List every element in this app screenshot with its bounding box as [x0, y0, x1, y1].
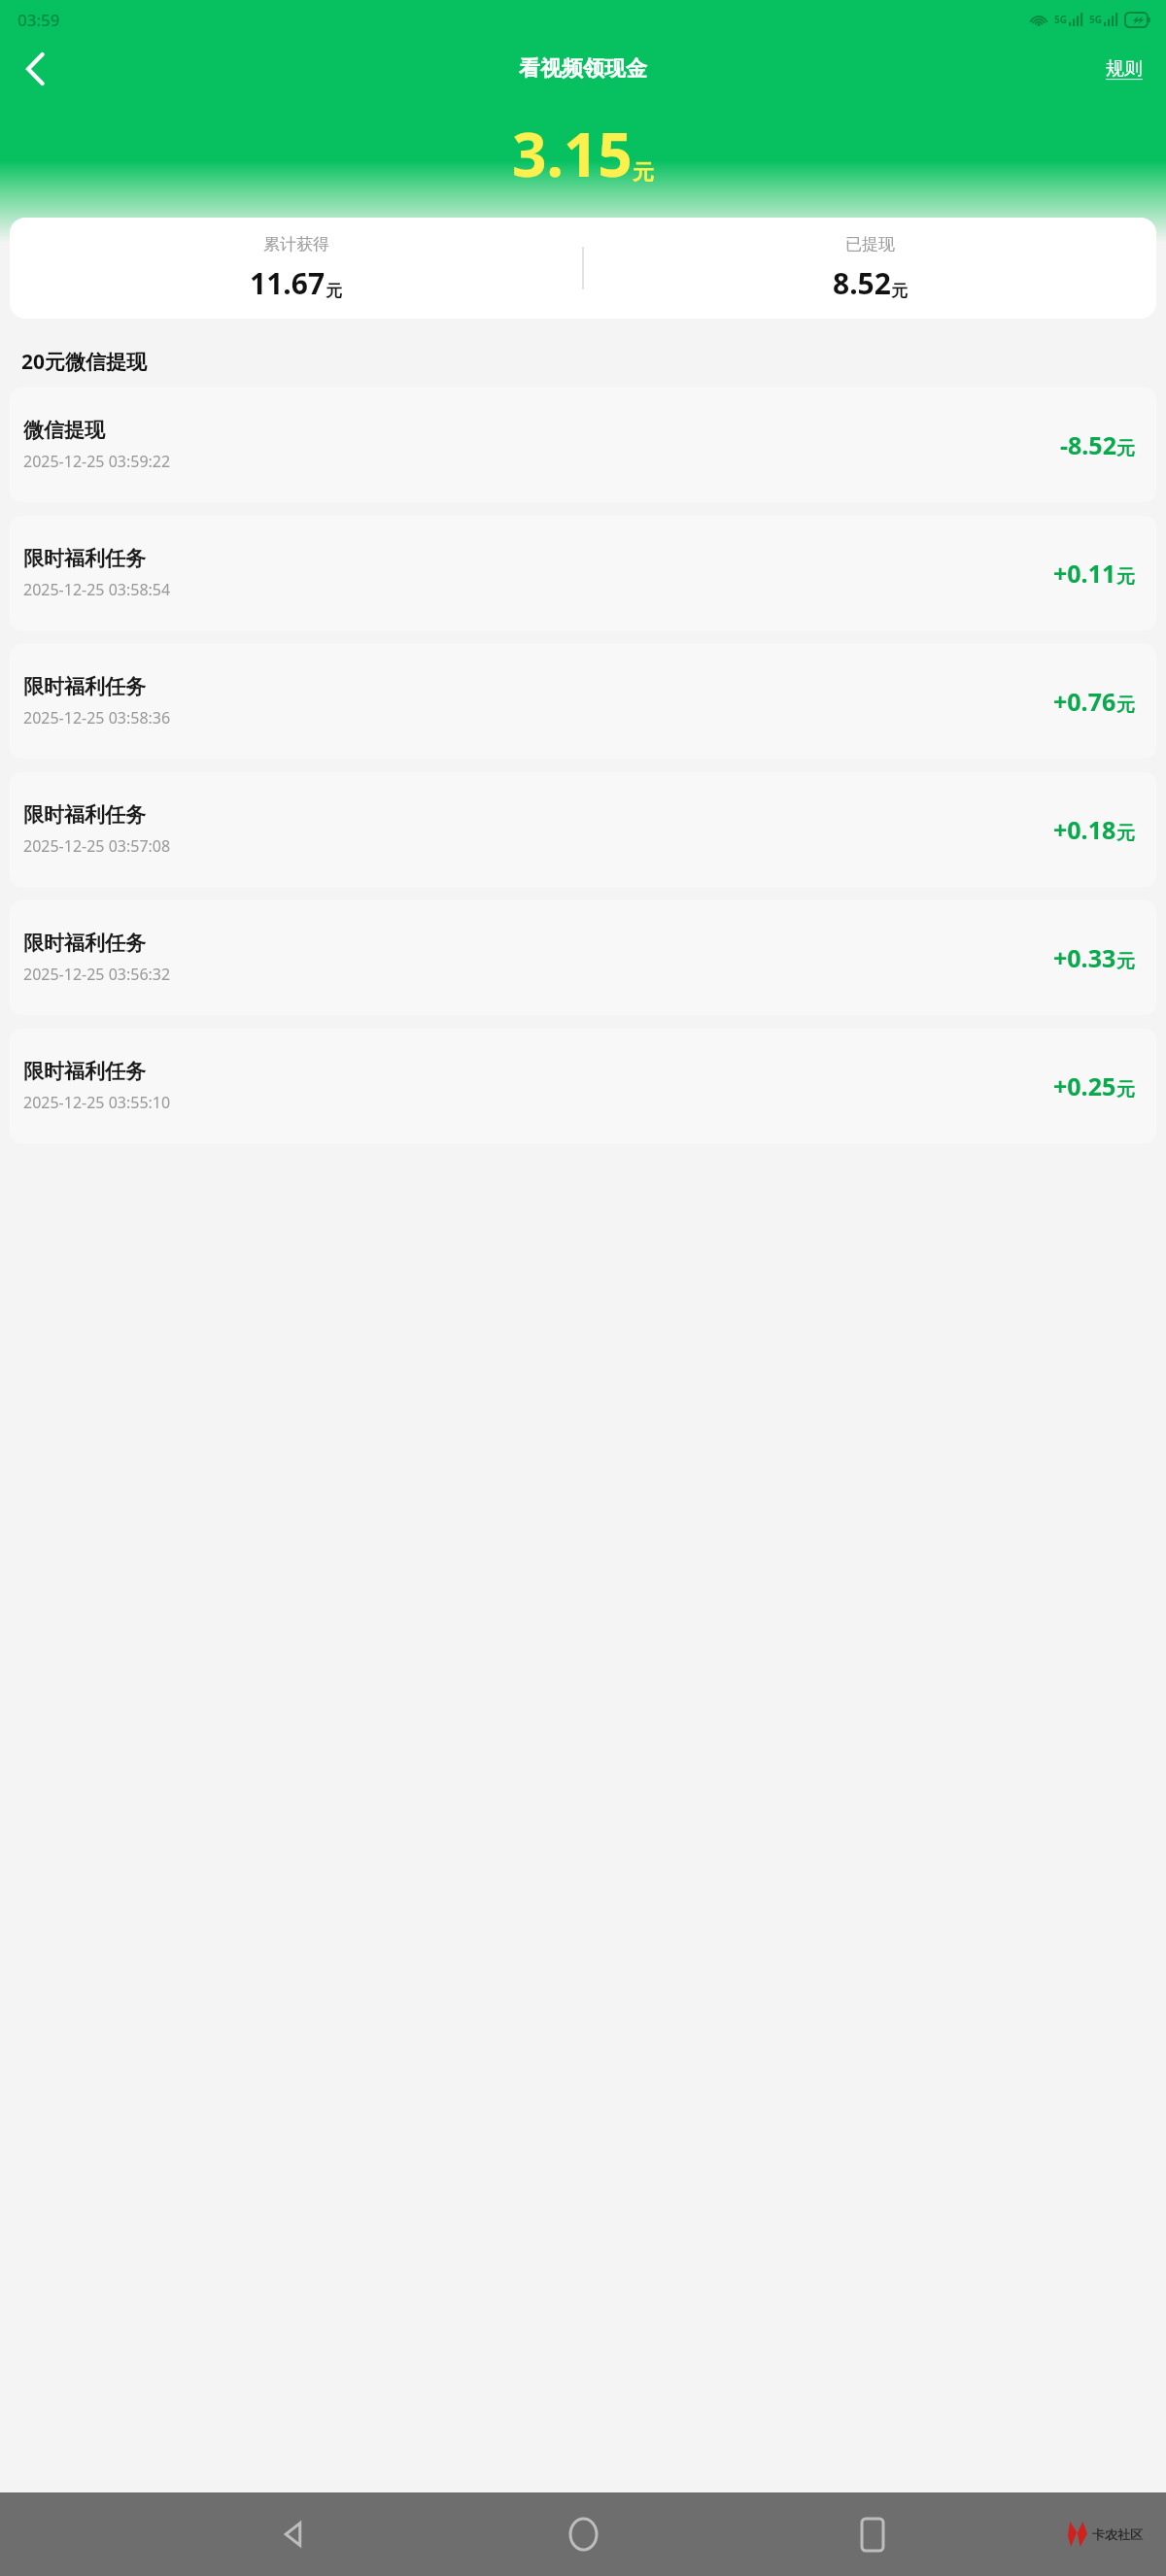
staticText: 看视频领现金: [519, 55, 647, 83]
button[interactable]: 限时福利任务: [10, 772, 1156, 887]
staticText: 限时福利任务: [23, 802, 146, 828]
staticText: 2025-12-25 03:55:10: [23, 1092, 171, 1113]
staticText: 2025-12-25 03:56:32: [23, 964, 171, 985]
button[interactable]: 限时福利任务: [10, 900, 1156, 1015]
staticText: 元: [1116, 694, 1135, 717]
staticText: 11.67: [250, 263, 326, 303]
staticText: 20元微信提现: [21, 348, 148, 376]
staticText: 2025-12-25 03:58:36: [23, 707, 171, 729]
staticText: +0.76: [1053, 685, 1116, 718]
button[interactable]: 累计获得: [10, 218, 1156, 319]
staticText: 限时福利任务: [23, 931, 146, 956]
staticText: 规则: [1106, 57, 1143, 81]
button[interactable]: Recents: [839, 2500, 907, 2568]
staticText: 03:59: [17, 9, 60, 31]
button[interactable]: Back: [10, 44, 60, 94]
staticText: +0.18: [1053, 813, 1116, 846]
staticText: 限时福利任务: [23, 546, 146, 571]
staticText: 元: [1116, 822, 1135, 845]
staticText: 限时福利任务: [23, 1059, 146, 1084]
staticText: +0.33: [1053, 941, 1116, 974]
staticText: 3.15: [512, 113, 633, 194]
staticText: -8.52: [1060, 428, 1116, 461]
staticText: 卡农社区: [1092, 2526, 1143, 2542]
staticText: 5G: [1089, 13, 1102, 26]
button[interactable]: Home: [549, 2500, 617, 2568]
button[interactable]: 微信提现: [10, 388, 1156, 502]
staticText: 限时福利任务: [23, 674, 146, 699]
staticText: +0.25: [1053, 1069, 1116, 1102]
staticText: 8.52: [833, 263, 891, 303]
button[interactable]: 规则: [1102, 51, 1147, 86]
staticText: 2025-12-25 03:58:54: [23, 579, 171, 600]
button[interactable]: 限时福利任务: [10, 644, 1156, 759]
staticText: 元: [1116, 437, 1135, 460]
staticText: 元: [1116, 1078, 1135, 1102]
staticText: 微信提现: [23, 418, 105, 443]
staticText: 元: [891, 281, 908, 301]
button[interactable]: Back: [260, 2500, 328, 2568]
staticText: 元: [326, 281, 342, 301]
staticText: 已提现: [845, 234, 895, 254]
staticText: 累计获得: [263, 234, 329, 254]
staticText: 元: [1116, 565, 1135, 589]
staticText: 2025-12-25 03:59:22: [23, 451, 171, 472]
button[interactable]: 限时福利任务: [10, 516, 1156, 630]
staticText: +0.11: [1053, 557, 1116, 590]
staticText: 元: [1116, 950, 1135, 973]
button[interactable]: 限时福利任务: [10, 1029, 1156, 1143]
staticText: 元: [633, 159, 654, 186]
staticText: 2025-12-25 03:57:08: [23, 835, 171, 857]
staticText: 5G: [1054, 13, 1067, 26]
